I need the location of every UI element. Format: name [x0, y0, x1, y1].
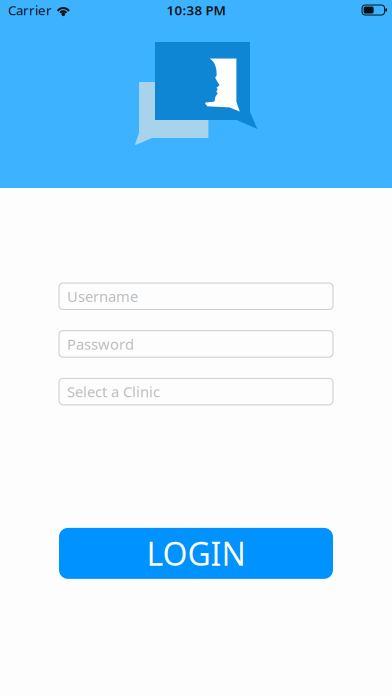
staticText: Username [67, 286, 138, 306]
button[interactable]: Select a Clinic [59, 378, 333, 405]
staticText: Password [67, 334, 134, 354]
staticText: LOGIN [146, 532, 245, 575]
staticText: Carrier [8, 1, 52, 19]
staticText: Select a Clinic [67, 382, 160, 401]
button[interactable]: Password [59, 331, 333, 357]
button[interactable]: Username [59, 283, 333, 309]
button[interactable]: LOGIN [59, 528, 333, 579]
staticText: 10:38 PM [166, 1, 225, 19]
